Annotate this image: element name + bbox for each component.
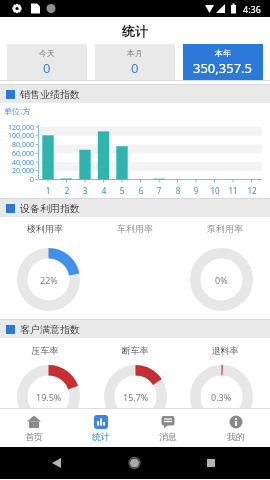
- staticText: 4: [97, 185, 111, 196]
- staticText: 2: [60, 185, 74, 196]
- staticText: 3: [78, 185, 92, 196]
- staticText: 断车率: [90, 345, 180, 356]
- staticText: 80,000: [0, 140, 34, 150]
- staticText: 销售业绩指数: [20, 88, 80, 101]
- staticText: 19.5%: [36, 391, 62, 403]
- staticText: 首页: [25, 431, 43, 442]
- button[interactable]: 统计: [67, 409, 134, 447]
- staticText: 压车率: [0, 345, 90, 356]
- button[interactable]: [0, 447, 60, 479]
- staticText: 退料率: [180, 345, 270, 356]
- staticText: 设备利用指数: [20, 202, 80, 215]
- staticText: 11: [226, 185, 240, 196]
- staticText: 单位:方: [4, 105, 31, 116]
- staticText: 60,000: [0, 149, 34, 159]
- staticText: 消息: [159, 431, 177, 442]
- button[interactable]: 本月: [95, 44, 175, 80]
- staticText: 12: [245, 185, 259, 196]
- staticText: 9: [189, 185, 203, 196]
- button[interactable]: 本年: [183, 44, 263, 80]
- staticText: 4:36: [243, 3, 261, 15]
- staticText: 5: [115, 185, 129, 196]
- staticText: 100,000: [0, 131, 34, 141]
- staticText: 1: [41, 185, 55, 196]
- staticText: 22%: [40, 274, 58, 286]
- button[interactable]: 首页: [0, 409, 67, 447]
- staticText: 统计: [92, 431, 110, 442]
- button[interactable]: 今天: [7, 44, 87, 80]
- button[interactable]: [105, 447, 165, 479]
- staticText: 0%: [215, 274, 228, 286]
- staticText: 8: [171, 185, 185, 196]
- staticText: 0.3%: [211, 391, 232, 403]
- staticText: 6: [134, 185, 148, 196]
- staticText: 40,000: [0, 158, 34, 168]
- staticText: 20,000: [0, 166, 34, 176]
- staticText: 泵利用率: [180, 223, 270, 234]
- staticText: 客户满意指数: [20, 323, 80, 336]
- staticText: 120,000: [0, 123, 34, 133]
- button[interactable]: 消息: [134, 409, 202, 447]
- button[interactable]: 我的: [202, 409, 270, 447]
- staticText: 我的: [227, 431, 245, 442]
- staticText: 15.7%: [123, 391, 149, 403]
- staticText: 统计: [122, 23, 148, 39]
- staticText: 0: [131, 59, 139, 77]
- button[interactable]: [210, 447, 270, 479]
- staticText: 今天: [39, 48, 55, 58]
- staticText: 10: [208, 185, 222, 196]
- staticText: 楼利用率: [0, 223, 90, 234]
- staticText: 0: [43, 59, 51, 77]
- staticText: 0: [0, 175, 34, 185]
- staticText: 本月: [127, 48, 143, 58]
- staticText: 车利用率: [90, 223, 180, 234]
- staticText: 7: [152, 185, 166, 196]
- staticText: 本年: [215, 48, 231, 58]
- staticText: 350,357.5: [193, 59, 253, 77]
